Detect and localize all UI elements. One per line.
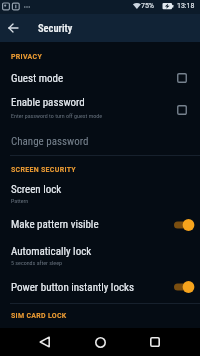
button[interactable]: Change password bbox=[0, 133, 200, 150]
staticText: 5 seconds after sleep bbox=[11, 259, 62, 266]
button[interactable]: Make pattern visible bbox=[0, 214, 200, 235]
staticText: PRIVACY bbox=[11, 53, 43, 61]
staticText: Security bbox=[38, 22, 73, 34]
button[interactable] bbox=[3, 19, 23, 37]
button[interactable] bbox=[80, 328, 120, 356]
staticText: Power button instantly locks bbox=[11, 281, 134, 294]
button[interactable]: Screen lock bbox=[0, 180, 200, 206]
button[interactable]: Enable password bbox=[0, 92, 200, 124]
staticText: Pattern bbox=[11, 197, 29, 204]
button[interactable] bbox=[135, 328, 175, 356]
staticText: Guest mode bbox=[11, 72, 64, 85]
button[interactable]: Automatically lock bbox=[0, 243, 200, 269]
staticText: Screen lock bbox=[11, 183, 62, 196]
staticText: Make pattern visible bbox=[11, 218, 99, 231]
staticText: SIM CARD LOCK bbox=[11, 312, 67, 320]
staticText: Enter password to turn off guest mode bbox=[11, 112, 102, 119]
button[interactable]: Power button instantly locks bbox=[0, 277, 200, 298]
button[interactable]: Guest mode bbox=[0, 66, 200, 90]
staticText: 13:18 bbox=[177, 2, 195, 10]
button[interactable] bbox=[25, 328, 65, 356]
staticText: SCREEN SECURITY bbox=[11, 166, 76, 174]
staticText: Enable password bbox=[11, 96, 85, 109]
staticText: 75% bbox=[141, 2, 154, 10]
staticText: Change password bbox=[11, 135, 89, 148]
staticText: Automatically lock bbox=[11, 245, 92, 258]
